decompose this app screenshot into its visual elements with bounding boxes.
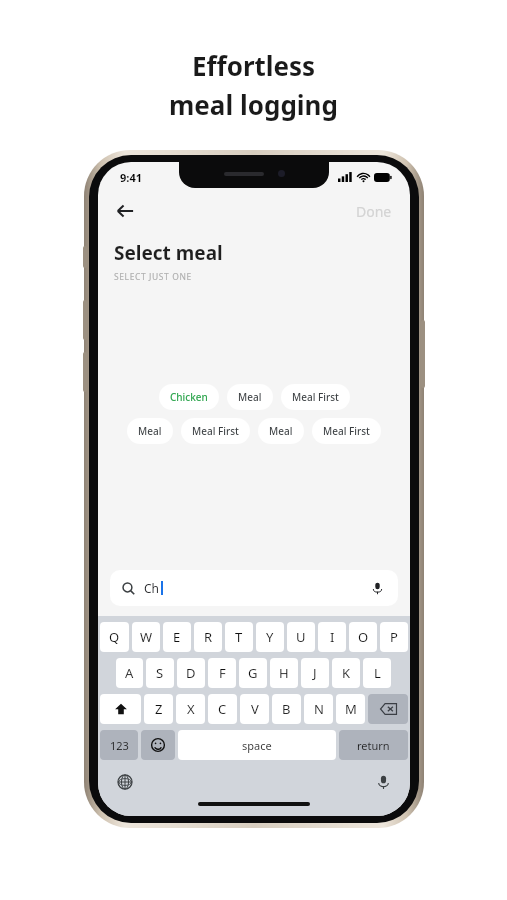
button[interactable]: space [178, 730, 336, 760]
staticText: space [242, 738, 272, 753]
button[interactable]: Emoji [141, 730, 175, 760]
button[interactable]: M [336, 694, 365, 724]
staticText: X [187, 700, 195, 718]
staticText: Meal [269, 424, 293, 438]
button[interactable]: G [239, 658, 267, 688]
button[interactable]: Meal First [312, 418, 381, 444]
button[interactable]: C [208, 694, 237, 724]
button[interactable]: O [349, 622, 377, 652]
button[interactable]: E [163, 622, 191, 652]
staticText: SELECT JUST ONE [114, 271, 192, 283]
button[interactable]: Voice search [368, 579, 386, 597]
button[interactable]: L [363, 658, 391, 688]
button[interactable]: return [339, 730, 408, 760]
staticText: U [296, 628, 306, 646]
button[interactable]: Back [106, 192, 144, 230]
staticText: J [313, 664, 317, 682]
staticText: N [314, 700, 324, 718]
button[interactable]: S [146, 658, 174, 688]
button[interactable]: X [176, 694, 205, 724]
button[interactable]: Meal First [281, 384, 350, 410]
staticText: B [282, 700, 291, 718]
button[interactable]: N [304, 694, 333, 724]
staticText: L [374, 664, 381, 682]
button[interactable]: Chicken [159, 384, 219, 410]
staticText: Meal First [192, 424, 239, 438]
staticText: W [140, 628, 153, 646]
staticText: Meal First [323, 424, 370, 438]
staticText: I [330, 628, 335, 646]
button[interactable]: Y [256, 622, 284, 652]
staticText: D [186, 664, 196, 682]
staticText: Effortless [192, 48, 316, 83]
staticText: 123 [110, 738, 129, 753]
button[interactable]: Q [100, 622, 129, 652]
button[interactable]: Meal [227, 384, 273, 410]
staticText: P [390, 628, 398, 646]
staticText: Meal First [292, 390, 339, 404]
button[interactable]: P [380, 622, 408, 652]
staticText: T [235, 628, 243, 646]
button[interactable]: W [132, 622, 160, 652]
staticText: K [342, 664, 351, 682]
staticText: 9:41 [120, 170, 142, 185]
staticText: Ch [144, 580, 160, 596]
button[interactable]: D [177, 658, 205, 688]
staticText: Select meal [114, 240, 223, 266]
button[interactable]: R [194, 622, 222, 652]
staticText: Chicken [170, 390, 208, 404]
button[interactable]: I [318, 622, 346, 652]
staticText: R [204, 628, 213, 646]
button[interactable]: Dictation [372, 771, 394, 793]
staticText: V [251, 700, 259, 718]
staticText: O [358, 628, 369, 646]
button[interactable]: Done [352, 198, 396, 225]
button[interactable]: Delete [368, 694, 408, 724]
button[interactable]: Z [144, 694, 173, 724]
staticText: M [345, 700, 357, 718]
button[interactable]: Change keyboard [114, 771, 136, 793]
staticText: Meal [138, 424, 162, 438]
button[interactable]: T [225, 622, 253, 652]
button[interactable]: U [287, 622, 315, 652]
button[interactable]: H [270, 658, 298, 688]
staticText: E [173, 628, 181, 646]
button[interactable]: Ch [110, 570, 398, 606]
staticText: Meal [238, 390, 262, 404]
button[interactable]: Meal [258, 418, 304, 444]
button[interactable]: Meal First [181, 418, 250, 444]
staticText: G [248, 664, 258, 682]
staticText: Y [266, 628, 274, 646]
button[interactable]: A [116, 658, 143, 688]
button[interactable]: B [272, 694, 301, 724]
button[interactable]: Shift [100, 694, 141, 724]
button[interactable]: K [332, 658, 360, 688]
staticText: Q [109, 628, 120, 646]
staticText: return [357, 738, 390, 753]
staticText: A [125, 664, 134, 682]
button[interactable]: F [208, 658, 236, 688]
button[interactable]: Meal [127, 418, 173, 444]
staticText: H [279, 664, 289, 682]
button[interactable]: J [301, 658, 329, 688]
staticText: C [218, 700, 227, 718]
staticText: Done [356, 202, 392, 221]
button[interactable]: V [240, 694, 269, 724]
staticText: meal logging [169, 87, 338, 122]
staticText: S [156, 664, 164, 682]
staticText: F [219, 664, 226, 682]
button[interactable]: 123 [100, 730, 138, 760]
staticText: Z [155, 700, 163, 718]
